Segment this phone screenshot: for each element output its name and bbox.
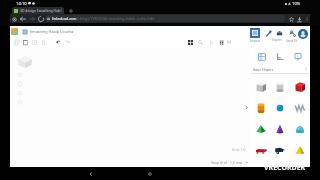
button[interactable]: Back — [18, 14, 27, 23]
button[interactable]: Bookmark — [287, 15, 295, 23]
staticText: Import — [250, 39, 261, 43]
button[interactable]: Ruler — [274, 51, 286, 63]
button[interactable]: Note — [292, 51, 304, 63]
button[interactable]: Zoom in — [17, 81, 23, 87]
button[interactable]: 3D design Smashing Hab — [12, 7, 64, 14]
button[interactable]: Paste — [21, 38, 30, 47]
button[interactable]: Scribble — [291, 99, 309, 117]
staticText: 10% — [292, 1, 301, 7]
button[interactable]: Copy — [12, 38, 21, 47]
button[interactable]: Ungroup — [195, 37, 206, 48]
button[interactable]: Duplicate — [30, 38, 39, 47]
staticText: Grid: 1.0 — [232, 147, 246, 152]
staticText: Smashing Habib Lousha — [30, 29, 74, 34]
staticText: VRECORDER — [264, 163, 306, 173]
button[interactable]: Car — [252, 141, 270, 159]
button[interactable]: Basic Shapes — [253, 65, 308, 73]
button[interactable]: Collapse panel — [244, 105, 249, 110]
button[interactable]: Undo — [54, 38, 63, 47]
button[interactable]: Cone — [271, 120, 289, 138]
staticText: 14:10 — [16, 1, 27, 7]
button[interactable]: More — [303, 15, 310, 22]
button[interactable]: Workplane — [256, 51, 268, 63]
button[interactable]: Text — [271, 141, 289, 159]
staticText: Snap Grid — [211, 160, 227, 165]
button[interactable]: Send To — [286, 26, 298, 44]
button[interactable]: Back — [86, 169, 95, 178]
button[interactable]: Cylinder — [271, 78, 289, 96]
staticText: 1.0 mm — [230, 160, 243, 165]
staticText: Send To — [286, 39, 298, 43]
button[interactable]: View cube — [16, 53, 33, 69]
button[interactable]: Zoom out — [17, 90, 23, 96]
button[interactable]: Account — [298, 29, 308, 39]
staticText: 3D design Smashing Hab — [20, 8, 60, 13]
button[interactable]: Group — [185, 37, 195, 47]
button[interactable]: Delete — [39, 38, 48, 47]
button[interactable]: Redo — [63, 38, 72, 47]
button[interactable]: Fit view — [17, 72, 23, 78]
button[interactable]: Export — [262, 26, 286, 44]
button[interactable]: Downloads — [295, 15, 303, 23]
button[interactable]: Box — [252, 78, 270, 96]
button[interactable]: 1.0 mm — [230, 160, 248, 165]
button[interactable]: Home view — [17, 99, 23, 105]
button[interactable]: Align — [206, 37, 217, 48]
button[interactable]: Sphere — [271, 99, 289, 117]
button[interactable]: New tab — [67, 7, 74, 14]
button[interactable]: Tinkercad logo — [11, 28, 18, 35]
button[interactable]: Recents — [145, 169, 154, 178]
button[interactable]: Pyramid — [252, 120, 270, 138]
button[interactable]: Dome — [291, 120, 309, 138]
staticText: /things/1VX0rD4d-smashing-habib-cushu/ed… — [77, 16, 155, 21]
button[interactable]: linkedcad.com — [45, 15, 285, 22]
button[interactable]: Mirror — [217, 38, 225, 46]
staticText: Basic Shapes — [253, 67, 274, 71]
staticText: linkedcad.com — [52, 16, 77, 21]
button[interactable]: Import — [248, 26, 262, 44]
button[interactable]: Reload — [36, 14, 45, 23]
button[interactable]: Wedge — [291, 141, 309, 159]
button[interactable]: Flip — [225, 38, 233, 46]
button[interactable]: Cylinder — [252, 99, 270, 117]
button[interactable]: Menu — [10, 15, 18, 23]
button[interactable]: Project — [22, 29, 27, 34]
button[interactable]: Red box — [291, 78, 309, 96]
button[interactable]: Forward — [27, 14, 36, 23]
staticText: Export — [272, 38, 282, 42]
